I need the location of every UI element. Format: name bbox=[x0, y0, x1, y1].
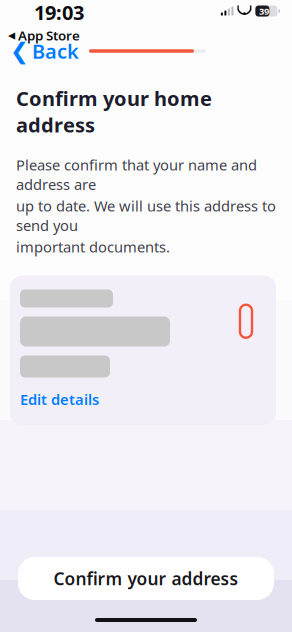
staticText: Confirm your home address bbox=[16, 85, 212, 138]
staticText: ◀ bbox=[8, 30, 15, 41]
staticText: App Store bbox=[18, 26, 80, 44]
button[interactable]: ❮ bbox=[0, 32, 87, 70]
staticText: important documents. bbox=[16, 237, 170, 256]
staticText: Confirm your address bbox=[53, 567, 238, 590]
staticText: Please confirm that your name and addres… bbox=[16, 155, 257, 194]
staticText: Back bbox=[32, 38, 79, 64]
button[interactable]: Edit details bbox=[20, 386, 105, 412]
staticText: Edit details bbox=[20, 389, 99, 409]
staticText: 39 bbox=[259, 5, 269, 17]
staticText: ❮ bbox=[10, 38, 29, 64]
staticText: 19:03 bbox=[34, 0, 84, 25]
staticText: up to date. We will use this address to … bbox=[16, 196, 276, 235]
button[interactable]: Confirm your address bbox=[18, 557, 274, 600]
